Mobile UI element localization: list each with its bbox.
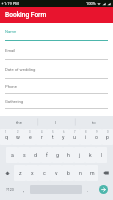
- staticText: i: [85, 134, 87, 140]
- staticText: 1:19 PM: [4, 1, 19, 6]
- staticText: k: [89, 152, 92, 158]
- button[interactable]: Name: [0, 23, 113, 41]
- staticText: Date of wedding: [5, 67, 36, 72]
- staticText: t: [52, 134, 54, 140]
- staticText: Email: [5, 48, 16, 53]
- staticText: Booking Form: [5, 11, 47, 19]
- staticText: v: [55, 170, 58, 176]
- staticText: a: [11, 152, 14, 158]
- staticText: b: [67, 170, 70, 176]
- button[interactable]: k: [85, 147, 96, 163]
- staticText: o: [95, 134, 98, 140]
- staticText: 7: [74, 131, 76, 134]
- staticText: j: [79, 152, 81, 158]
- button[interactable]: z: [14, 165, 26, 181]
- button[interactable]: f: [41, 147, 52, 163]
- staticText: s: [23, 152, 26, 158]
- button[interactable]: 9: [91, 129, 102, 145]
- button[interactable]: 5: [47, 129, 58, 145]
- staticText: 1: [5, 131, 7, 134]
- staticText: ?123: [6, 188, 14, 192]
- staticText: y: [62, 134, 65, 140]
- staticText: r: [41, 134, 43, 140]
- button[interactable]: h: [63, 147, 74, 163]
- button[interactable]: 6: [58, 129, 69, 145]
- button[interactable]: m: [86, 165, 98, 181]
- staticText: the: [16, 120, 22, 125]
- button[interactable]: v: [50, 165, 62, 181]
- button[interactable]: 8: [80, 129, 91, 145]
- staticText: 4: [41, 131, 43, 134]
- staticText: q: [5, 134, 8, 140]
- button[interactable]: Email: [0, 41, 113, 60]
- staticText: w: [16, 134, 20, 140]
- staticText: c: [43, 170, 46, 176]
- staticText: 6: [63, 131, 65, 134]
- button[interactable]: ?123: [0, 182, 19, 197]
- staticText: n: [79, 170, 82, 176]
- staticText: l: [101, 152, 103, 158]
- button[interactable]: to: [75, 116, 113, 128]
- button[interactable]: b: [62, 165, 74, 181]
- staticText: 2: [17, 131, 19, 134]
- staticText: 0: [107, 131, 109, 134]
- staticText: g: [56, 152, 59, 158]
- staticText: d: [34, 152, 37, 158]
- staticText: 100%: [86, 1, 96, 6]
- button[interactable]: 1: [0, 129, 12, 145]
- staticText: I: [55, 120, 57, 125]
- staticText: .: [87, 187, 89, 193]
- staticText: m: [90, 170, 95, 176]
- button[interactable]: x: [26, 165, 38, 181]
- button[interactable]: I: [37, 116, 75, 128]
- button[interactable]: Comma: [19, 182, 29, 197]
- button[interactable]: n: [74, 165, 86, 181]
- staticText: h: [67, 152, 70, 158]
- staticText: 5: [52, 131, 54, 134]
- staticText: e: [29, 134, 32, 140]
- button[interactable]: g: [52, 147, 63, 163]
- button[interactable]: 7: [69, 129, 80, 145]
- button[interactable]: c: [38, 165, 50, 181]
- button[interactable]: Enter: [99, 185, 108, 194]
- button[interactable]: a: [6, 147, 18, 163]
- staticText: 3: [29, 131, 31, 134]
- button[interactable]: the: [0, 116, 37, 128]
- staticText: p: [106, 134, 109, 140]
- button[interactable]: Backspace: [99, 165, 112, 181]
- staticText: f: [46, 152, 48, 158]
- staticText: z: [19, 170, 22, 176]
- staticText: to: [92, 120, 96, 125]
- button[interactable]: Gathering: [0, 94, 113, 109]
- button[interactable]: j: [74, 147, 85, 163]
- staticText: u: [73, 134, 76, 140]
- button[interactable]: Booking Form: [0, 7, 113, 23]
- staticText: 9: [96, 131, 98, 134]
- staticText: x: [31, 170, 34, 176]
- staticText: 8: [85, 131, 87, 134]
- button[interactable]: 4: [36, 129, 47, 145]
- staticText: Phone: [5, 84, 17, 89]
- button[interactable]: d: [30, 147, 41, 163]
- staticText: Name: [5, 29, 17, 34]
- button[interactable]: Shift: [1, 165, 13, 181]
- button[interactable]: l: [96, 147, 107, 163]
- button[interactable]: Date of wedding: [0, 60, 113, 79]
- button[interactable]: Phone: [0, 79, 113, 94]
- button[interactable]: s: [18, 147, 30, 163]
- button[interactable]: 2: [12, 129, 24, 145]
- staticText: ,: [23, 187, 25, 193]
- button[interactable]: 3: [24, 129, 36, 145]
- staticText: Gathering: [5, 99, 24, 104]
- button[interactable]: 0: [102, 129, 113, 145]
